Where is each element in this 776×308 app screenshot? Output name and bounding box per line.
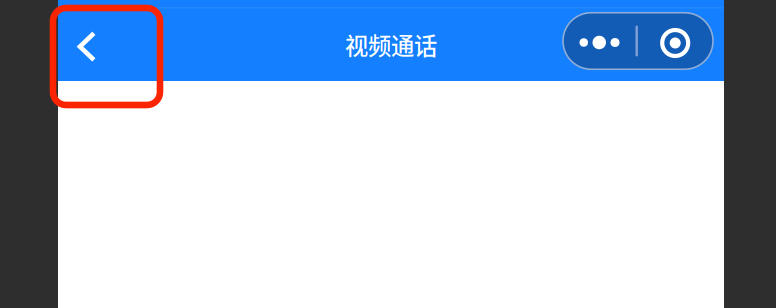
staticText: 视频通话 bbox=[345, 28, 437, 61]
button[interactable]: Back bbox=[58, 3, 116, 77]
button[interactable]: More bbox=[563, 13, 635, 69]
button[interactable]: Close mini program bbox=[638, 13, 712, 69]
